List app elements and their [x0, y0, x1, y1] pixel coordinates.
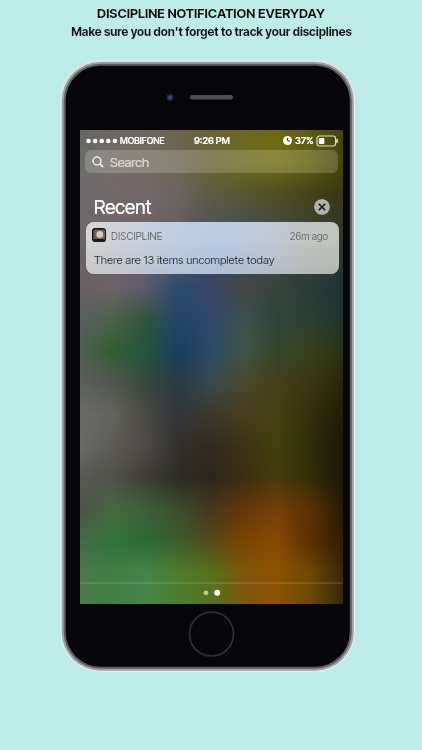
- staticText: There are 13 items uncomplete today: [94, 253, 275, 267]
- button[interactable]: DISCIPLINE: [86, 222, 339, 274]
- staticText: MOBIFONE: [120, 135, 165, 146]
- staticText: 26m ago: [289, 230, 328, 242]
- staticText: Recent: [94, 196, 152, 219]
- staticText: DISCIPLINE NOTIFICATION EVERYDAY: [97, 5, 325, 21]
- staticText: 37%: [295, 135, 314, 146]
- staticText: 9:26 PM: [194, 135, 230, 146]
- staticText: Search: [110, 154, 150, 170]
- button[interactable]: Search: [85, 150, 338, 173]
- staticText: Make sure you don't forget to track your…: [71, 24, 352, 39]
- staticText: DISCIPLINE: [111, 230, 163, 242]
- button[interactable]: Clear recent: [314, 199, 330, 215]
